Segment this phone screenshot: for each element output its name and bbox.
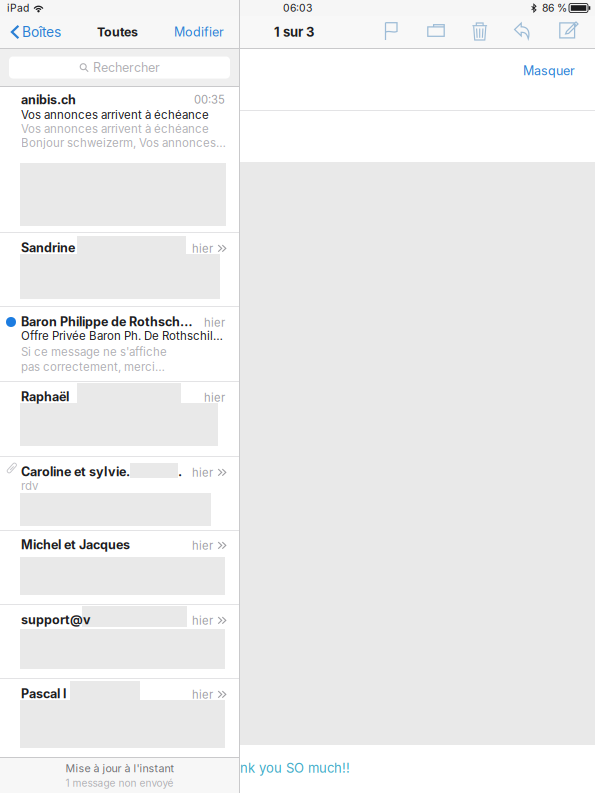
staticText: hier [204, 316, 225, 330]
staticText: Toutes [97, 24, 138, 39]
staticText: Masquer [523, 63, 575, 78]
button[interactable]: anibis.ch [0, 87, 239, 232]
button[interactable]: Flag [372, 17, 415, 46]
staticText: Si ce message ne s'affiche [21, 345, 167, 359]
staticText: Mise à jour à l'instant [65, 762, 173, 775]
staticText: Pascal l [21, 686, 66, 701]
staticText: 06:03 [283, 2, 312, 14]
button[interactable]: Michel et Jacques [0, 531, 239, 604]
staticText: Boîtes [22, 24, 61, 40]
staticText: nk you SO much!! [240, 760, 350, 776]
staticText: hier [192, 614, 213, 628]
button[interactable]: Masquer [515, 49, 595, 86]
button[interactable]: Sandrine [0, 233, 239, 306]
button[interactable]: Boîtes [0, 17, 61, 47]
staticText: Vos annonces arrivent à échéance [21, 122, 209, 136]
button[interactable]: Reply [502, 17, 547, 46]
button[interactable]: Compose [547, 17, 590, 46]
staticText: 1 sur 3 [274, 24, 314, 40]
button[interactable]: Caroline et sylvie. [0, 457, 239, 530]
staticText: Raphaël [21, 389, 69, 404]
button[interactable]: Rechercher [9, 56, 230, 78]
staticText: pas correctement, merci… [21, 360, 165, 374]
staticText: Michel et Jacques [21, 537, 130, 552]
staticText: hier [192, 539, 213, 553]
staticText: hier [204, 391, 225, 405]
staticText: Modifier [174, 24, 224, 40]
staticText: support@v [21, 612, 91, 627]
staticText: hier [192, 242, 213, 256]
staticText: . [178, 464, 182, 479]
staticText: anibis.ch [21, 92, 76, 107]
button[interactable]: Pascal l [0, 679, 239, 757]
staticText: 86 % [542, 2, 567, 14]
staticText: 00:35 [194, 93, 225, 107]
staticText: Vos annonces arrivent à échéance [21, 108, 209, 122]
button[interactable]: Delete [460, 17, 502, 46]
button[interactable]: support@v [0, 605, 239, 678]
staticText: Sandrine [21, 240, 75, 255]
staticText: Rechercher [93, 60, 160, 75]
button[interactable]: Modifier [174, 18, 239, 46]
staticText: hier [192, 466, 213, 480]
staticText: rdv [21, 479, 38, 493]
button[interactable]: Move to folder [415, 17, 460, 46]
staticText: iPad [7, 2, 29, 14]
staticText: 1 message non envoyé [65, 777, 173, 789]
staticText: Caroline et sylvie. [21, 464, 130, 479]
staticText: Offre Privée Baron Ph. De Rothschil… [21, 329, 223, 343]
button[interactable]: Baron Philippe de Rothsch… [0, 307, 239, 381]
staticText: Bonjour schweizerm, Vos annonces… [21, 136, 226, 150]
staticText: Baron Philippe de Rothsch… [21, 314, 193, 329]
staticText: hier [192, 688, 213, 702]
button[interactable]: Raphaël [0, 382, 239, 456]
